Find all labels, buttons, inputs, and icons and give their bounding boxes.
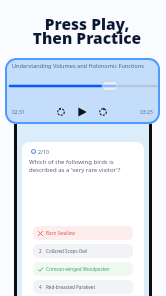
button[interactable]: Replay 10 seconds xyxy=(55,106,67,118)
staticText: Which of the following birds is describe… xyxy=(29,158,121,174)
button[interactable]: 2 xyxy=(33,244,133,258)
staticText: Understanding Volumes and Holonomic Func… xyxy=(12,62,145,70)
staticText: 03:25 xyxy=(140,109,153,116)
staticText: Press Play, Then Practice xyxy=(4,13,166,49)
staticText: 2 xyxy=(39,248,42,254)
button[interactable]: Play xyxy=(76,106,88,118)
staticText: Red-breasted Parakeet xyxy=(46,284,96,290)
staticText: Crimson-winged Woodpecker xyxy=(46,266,110,272)
staticText: 4 xyxy=(39,284,42,290)
staticText: Barn Swallow xyxy=(46,230,75,236)
button[interactable]: Crimson-winged Woodpecker xyxy=(33,262,133,276)
staticText: 02:31 xyxy=(12,109,25,116)
staticText: 2/10 xyxy=(38,148,50,155)
staticText: Collared Scops Owl xyxy=(46,248,88,254)
button[interactable]: Forward 10 seconds xyxy=(97,106,109,118)
button[interactable]: Barn Swallow xyxy=(33,226,133,240)
button[interactable]: 4 xyxy=(33,280,133,294)
